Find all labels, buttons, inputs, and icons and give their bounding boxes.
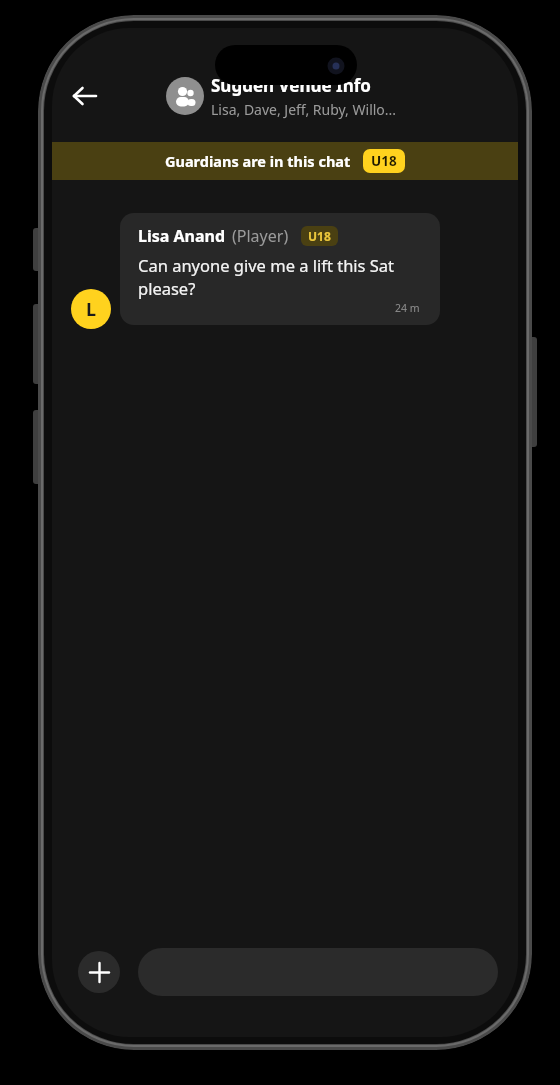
button[interactable] [65, 76, 105, 116]
staticText: Lisa, Dave, Jeff, Ruby, Willo... [211, 100, 397, 119]
button[interactable] [138, 948, 498, 996]
staticText: L [86, 297, 97, 322]
button[interactable]: Guardians are in this chat [52, 142, 518, 180]
staticText: Can anyone give me a lift this Sat pleas… [138, 254, 395, 300]
staticText: U18 [371, 152, 397, 170]
staticText: Lisa Anand [138, 225, 226, 247]
staticText: U18 [308, 228, 331, 244]
staticText: 24 m [395, 301, 420, 315]
staticText: (Player) [232, 225, 289, 247]
button[interactable] [78, 951, 120, 993]
staticText: Sugden Venue Info [211, 74, 371, 97]
staticText: Guardians are in this chat [165, 151, 351, 171]
button[interactable]: Lisa Anand [120, 213, 440, 325]
